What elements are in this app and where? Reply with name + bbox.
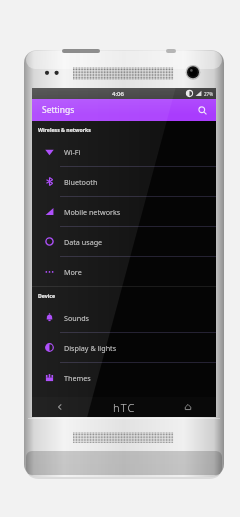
staticText: Data usage [64, 237, 103, 247]
button[interactable]: Themes [32, 363, 216, 392]
staticText: Device [38, 292, 56, 299]
staticText: More [64, 267, 82, 277]
staticText: Themes [64, 373, 91, 383]
staticText: hTC [113, 400, 136, 415]
button[interactable]: Wi-Fi [32, 137, 216, 166]
button[interactable]: Bluetooth [32, 167, 216, 196]
staticText: Bluetooth [64, 177, 98, 187]
staticText: Mobile networks [64, 207, 121, 217]
button[interactable]: Mobile networks [32, 197, 216, 226]
staticText: Wireless & networks [38, 126, 91, 133]
button[interactable]: Back [32, 397, 88, 417]
staticText: Sounds [64, 313, 90, 323]
button[interactable]: Sounds [32, 303, 216, 332]
button[interactable]: Data usage [32, 227, 216, 256]
staticText: Settings [42, 104, 75, 116]
staticText: Wi-Fi [64, 147, 81, 157]
staticText: 4:06 [112, 90, 124, 98]
button[interactable]: Search [194, 102, 210, 118]
button[interactable]: More [32, 257, 216, 286]
staticText: 27% [204, 91, 213, 97]
button[interactable]: Home [160, 397, 216, 417]
staticText: Display & lights [64, 343, 117, 353]
button[interactable]: Display & lights [32, 333, 216, 362]
